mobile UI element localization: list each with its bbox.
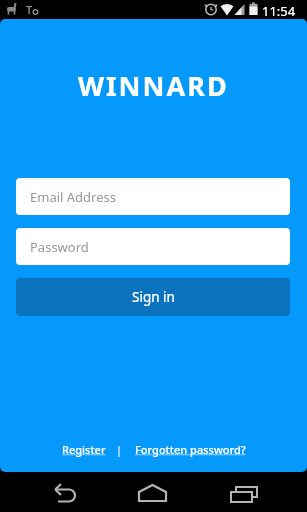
- staticText: Email Address: [30, 188, 116, 206]
- staticText: Sign in: [132, 288, 175, 306]
- button[interactable]: [222, 472, 262, 512]
- button[interactable]: [132, 472, 172, 512]
- staticText: Register: [62, 442, 106, 457]
- button[interactable]: Forgotten password?: [135, 442, 246, 457]
- staticText: WINNARD: [78, 67, 229, 101]
- button[interactable]: [41, 472, 81, 512]
- staticText: T: [26, 2, 33, 17]
- button[interactable]: Password: [16, 228, 290, 265]
- staticText: Password: [30, 238, 89, 256]
- button[interactable]: Email Address: [16, 178, 290, 215]
- staticText: Forgotten password?: [135, 442, 246, 457]
- button[interactable]: Sign in: [16, 278, 290, 316]
- staticText: 11:54: [262, 2, 296, 20]
- button[interactable]: Register: [62, 442, 106, 457]
- staticText: |: [116, 442, 123, 457]
